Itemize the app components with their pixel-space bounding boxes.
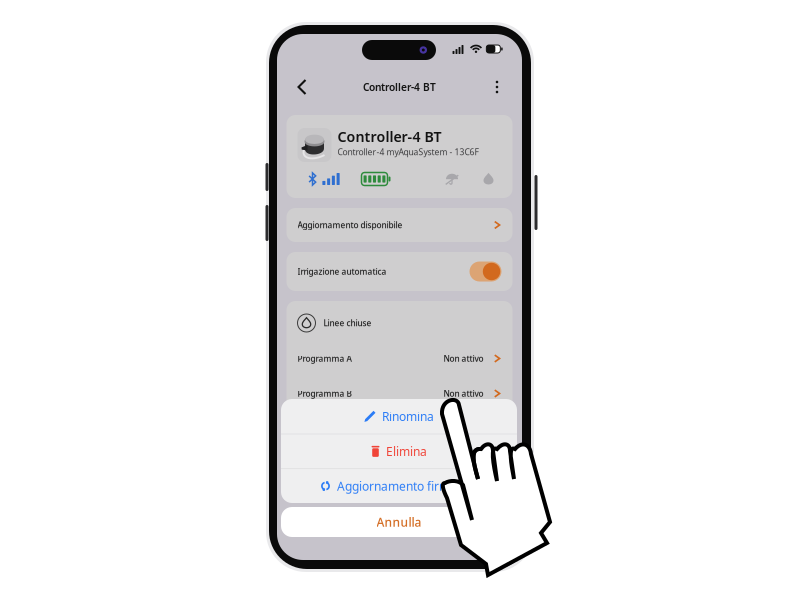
staticText: Non attivo [443,353,483,364]
staticText: Controller-4 BT [363,80,436,94]
staticText: Controller-4 BT [337,127,441,146]
staticText: Programma B [297,388,351,399]
button[interactable]: Programma B [286,376,512,411]
staticText: Aggiornamento disponibile [297,219,402,231]
button[interactable]: Elimina [281,434,517,468]
button[interactable]: Aggiornamento disponibile [286,208,512,242]
staticText: Elimina [386,443,427,459]
button[interactable]: More options [483,72,511,102]
button[interactable]: Rinomina [281,399,517,434]
staticText: Aggiornamento firmware [337,478,478,494]
staticText: Irrigazione automatica [297,266,386,277]
button[interactable]: Back [288,72,316,102]
staticText: Rinomina [382,408,434,424]
staticText: Linee chiuse [323,317,371,329]
button[interactable]: Programma A [286,341,512,376]
button[interactable]: Annulla [281,507,517,537]
staticText: Annulla [376,514,421,530]
button[interactable]: Aggiornamento firmware [281,469,517,503]
button[interactable]: Irrigazione automatica [286,252,512,291]
staticText: Non attivo [443,388,483,399]
staticText: Programma A [297,353,351,364]
staticText: Controller-4 myAquaSystem - 13C6F [337,146,478,158]
